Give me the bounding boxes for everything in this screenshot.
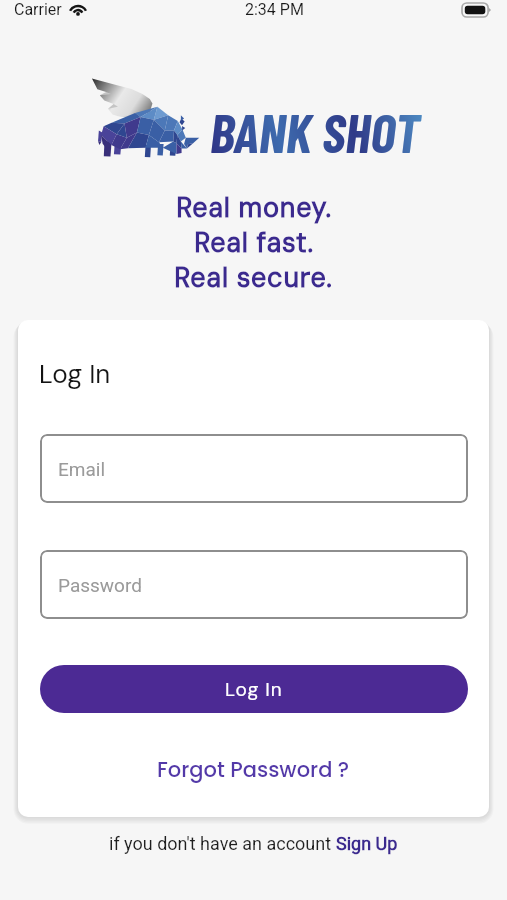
- staticText: Log In: [225, 677, 283, 702]
- other: Wi-Fi signal: [69, 3, 87, 16]
- button[interactable]: Email: [40, 434, 468, 503]
- button[interactable]: Log In: [40, 665, 468, 713]
- other: Battery full: [462, 3, 491, 17]
- button[interactable]: Forgot Password ?: [153, 753, 354, 786]
- staticText: Real money.: [176, 190, 332, 225]
- staticText: BANK SHOT: [210, 99, 420, 164]
- staticText: Forgot Password ?: [157, 755, 350, 784]
- staticText: Email: [58, 458, 106, 480]
- staticText: Real secure.: [174, 260, 333, 295]
- staticText: 2:34 PM: [245, 0, 304, 19]
- staticText: Carrier: [14, 0, 62, 19]
- staticText: Real fast.: [194, 225, 314, 260]
- staticText: Log In: [39, 357, 111, 391]
- other: Bank Shot winged rhino logo: [90, 73, 205, 163]
- staticText: Sign Up: [336, 833, 398, 854]
- button[interactable]: Sign Up: [336, 833, 398, 854]
- staticText: Password: [58, 574, 142, 596]
- staticText: if you don't have an account: [109, 833, 336, 854]
- button[interactable]: Password: [40, 550, 468, 619]
